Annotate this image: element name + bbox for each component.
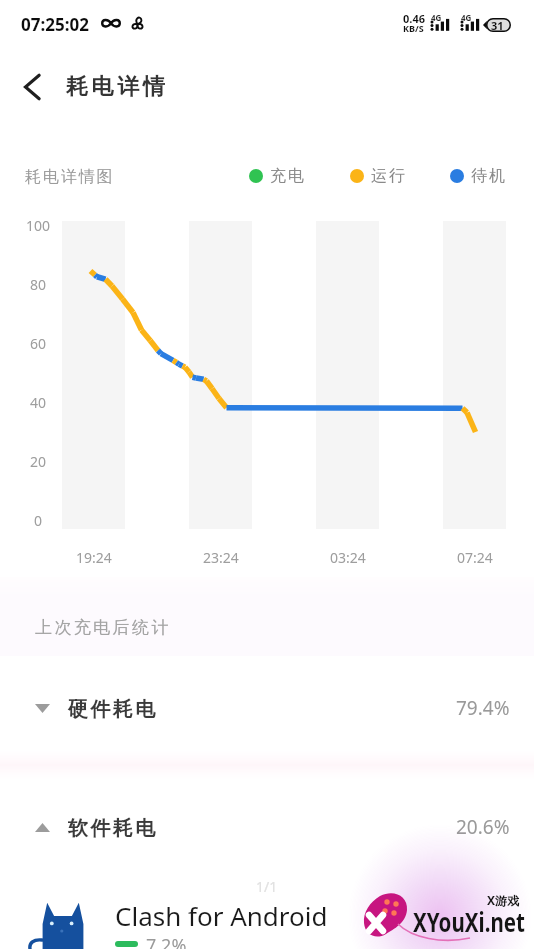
staticText: 上次充电后统计 xyxy=(35,617,171,638)
staticText: 100 xyxy=(26,216,51,235)
staticText: 79.4% xyxy=(456,695,510,721)
staticText: 60 xyxy=(30,334,47,353)
button[interactable]: 软件耗电 xyxy=(0,801,534,855)
staticText: 4G xyxy=(461,12,472,23)
staticText: 19:24 xyxy=(76,548,112,567)
staticText: KB/S xyxy=(403,22,424,34)
staticText: 0.46 xyxy=(403,11,425,26)
staticText: 待机 xyxy=(471,166,507,186)
staticText: 07:24 xyxy=(457,548,493,567)
staticText: 80 xyxy=(30,275,47,294)
staticText: 31 xyxy=(491,18,504,33)
staticText: 20.6% xyxy=(456,814,510,840)
staticText: 软件耗电 xyxy=(68,816,158,841)
button[interactable]: 充电 xyxy=(249,164,306,188)
staticText: XYouXi.net xyxy=(413,904,525,939)
staticText: 40 xyxy=(30,393,47,412)
button[interactable]: 硬件耗电 xyxy=(0,682,534,736)
staticText: 07:25:02 xyxy=(21,13,89,36)
staticText: 1/1 xyxy=(256,877,278,896)
staticText: 充电 xyxy=(270,166,306,186)
staticText: 运行 xyxy=(371,166,407,186)
staticText: 硬件耗电 xyxy=(68,697,158,722)
button[interactable]: 待机 xyxy=(450,164,507,188)
staticText: 7.2% xyxy=(146,933,187,949)
staticText: 20 xyxy=(30,452,47,471)
staticText: 23:24 xyxy=(203,548,239,567)
staticText: Clash for Android xyxy=(115,898,328,933)
staticText: 耗电详情图 xyxy=(25,167,115,187)
staticText: 0 xyxy=(34,511,43,530)
staticText: X游戏 xyxy=(487,892,520,908)
button[interactable]: Back xyxy=(6,62,60,112)
staticText: 03:24 xyxy=(330,548,366,567)
staticText: 4G xyxy=(431,12,442,23)
button[interactable]: 运行 xyxy=(350,164,407,188)
staticText: 耗电详情 xyxy=(66,73,169,101)
